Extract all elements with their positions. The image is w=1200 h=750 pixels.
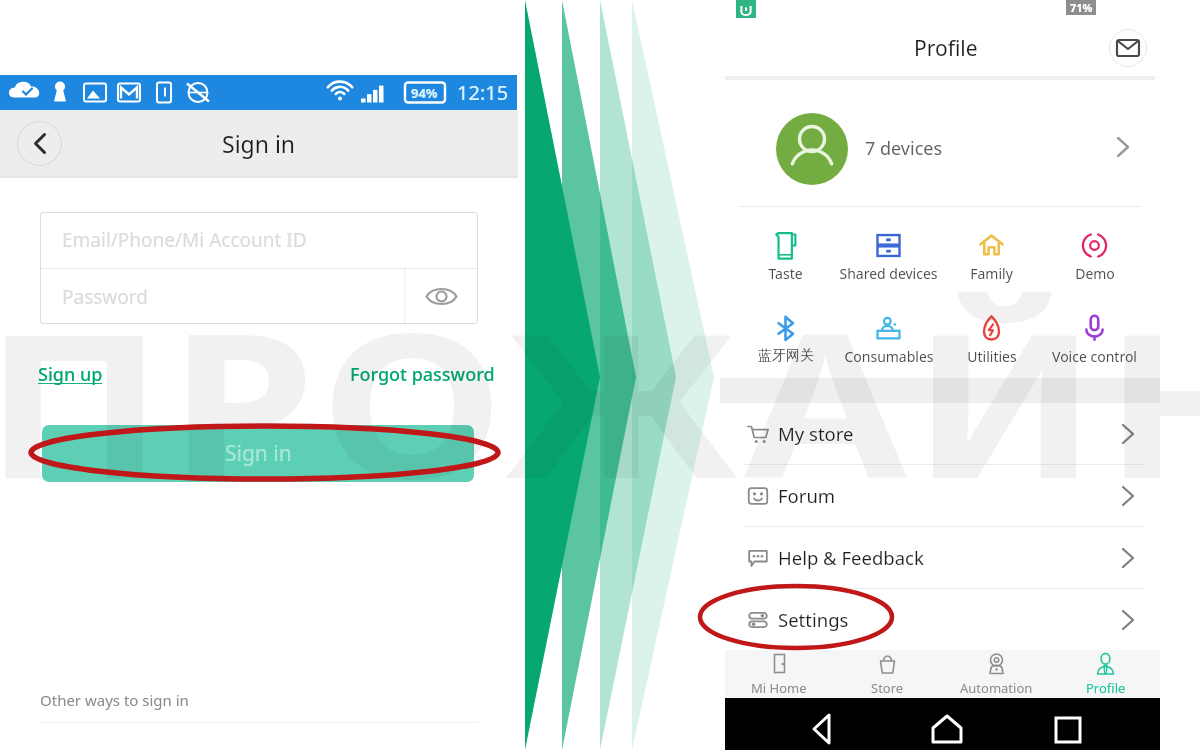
- staticText: Automation: [960, 679, 1033, 697]
- button[interactable]: Demo: [1043, 231, 1146, 287]
- staticText: Shared devices: [839, 264, 938, 283]
- staticText: Store: [871, 679, 904, 697]
- staticText: ПРОЖАЙН: [0, 264, 1200, 536]
- staticText: Password: [62, 284, 148, 310]
- button[interactable]: Sign up: [36, 360, 105, 389]
- staticText: Consumables: [844, 347, 934, 366]
- staticText: 71%: [1070, 0, 1093, 15]
- button[interactable]: Home: [930, 712, 958, 740]
- staticText: Other ways to sign in: [40, 690, 189, 710]
- button[interactable]: Help & Feedback: [720, 527, 1160, 589]
- button[interactable]: Automation: [942, 650, 1051, 698]
- staticText: Voice control: [1052, 347, 1137, 366]
- staticText: Sign up: [38, 362, 103, 387]
- staticText: Taste: [768, 264, 803, 283]
- staticText: 12:15: [457, 79, 509, 106]
- staticText: Mi Home: [751, 679, 807, 697]
- staticText: 蓝牙网关: [758, 347, 814, 365]
- button[interactable]: Profile: [1051, 650, 1160, 698]
- button[interactable]: Taste: [734, 231, 837, 287]
- button[interactable]: My store: [720, 403, 1160, 465]
- staticText: Profile: [914, 34, 978, 63]
- button[interactable]: Recent apps: [1051, 712, 1079, 740]
- button[interactable]: Store: [833, 650, 942, 698]
- staticText: Email/Phone/Mi Account ID: [62, 227, 307, 253]
- button[interactable]: 蓝牙网关: [734, 314, 837, 370]
- button[interactable]: Forgot password: [348, 360, 497, 389]
- staticText: Utilities: [967, 347, 1017, 366]
- button[interactable]: Email/Phone/Mi Account ID: [40, 212, 478, 268]
- staticText: 7 devices: [865, 136, 943, 161]
- button[interactable]: Family: [940, 231, 1043, 287]
- button[interactable]: Settings: [720, 589, 1160, 651]
- staticText: Sign in: [222, 128, 296, 159]
- staticText: Forgot password: [350, 362, 495, 387]
- button[interactable]: 7 devices: [720, 80, 1160, 206]
- button[interactable]: Consumables: [837, 314, 940, 370]
- staticText: Forum: [778, 483, 836, 508]
- button[interactable]: Shared devices: [837, 231, 940, 287]
- staticText: Sign in: [225, 439, 292, 468]
- staticText: Family: [970, 264, 1013, 283]
- staticText: 94%: [411, 84, 438, 102]
- staticText: Profile: [1086, 679, 1126, 697]
- button[interactable]: Utilities: [940, 314, 1043, 370]
- button[interactable]: Mi Home: [725, 650, 833, 698]
- staticText: Settings: [778, 607, 849, 632]
- button[interactable]: Back: [17, 121, 62, 166]
- button[interactable]: Forum: [720, 465, 1160, 527]
- staticText: Demo: [1075, 264, 1115, 283]
- button[interactable]: Show password: [405, 269, 478, 324]
- staticText: Help & Feedback: [778, 545, 924, 570]
- button[interactable]: Back: [809, 712, 837, 740]
- button[interactable]: Messages: [1109, 29, 1147, 67]
- button[interactable]: Sign in: [42, 425, 474, 482]
- staticText: My store: [778, 421, 854, 446]
- button[interactable]: Voice control: [1043, 314, 1146, 370]
